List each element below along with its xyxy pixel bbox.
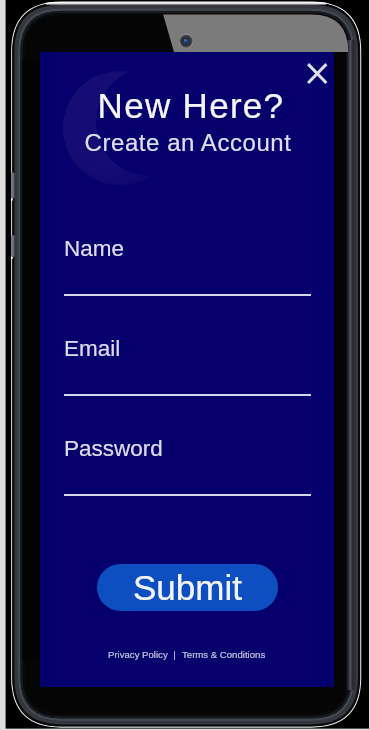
staticText: Name	[64, 236, 125, 261]
staticText: Password	[64, 436, 163, 461]
staticText: New Here?	[44, 86, 338, 125]
button[interactable]: Email	[64, 336, 311, 396]
staticText: |	[168, 649, 182, 660]
staticText: Create an Account	[41, 129, 335, 156]
staticText: Submit	[133, 568, 242, 607]
staticText: Email	[64, 336, 121, 361]
button[interactable]: Submit	[97, 564, 278, 611]
button[interactable]: Close	[298, 56, 334, 92]
button[interactable]: Name	[64, 236, 311, 296]
button[interactable]: Privacy Policy	[108, 649, 168, 660]
button[interactable]: Password	[64, 436, 311, 496]
button[interactable]: Terms & Conditions	[182, 649, 266, 660]
